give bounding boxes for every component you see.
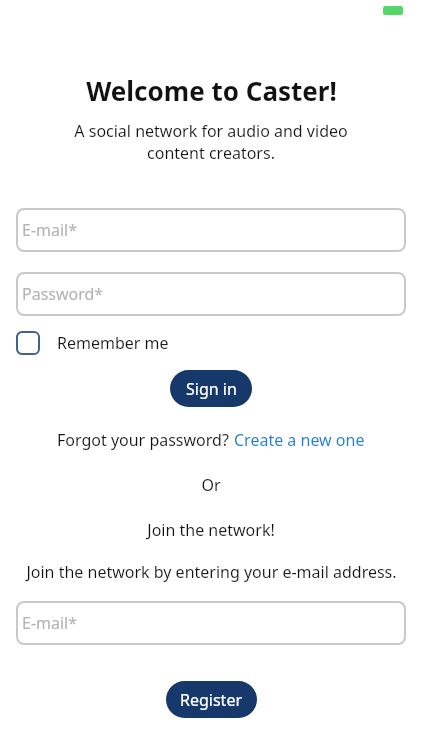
- staticText: A social network for audio and video con…: [74, 120, 348, 164]
- staticText: Join the network!: [147, 519, 275, 541]
- staticText: Or: [201, 474, 221, 496]
- button[interactable]: E-mail*: [16, 208, 406, 252]
- button[interactable]: Create a new one: [234, 429, 365, 451]
- staticText: E-mail*: [22, 219, 78, 241]
- staticText: Remember me: [57, 332, 169, 354]
- staticText: E-mail*: [22, 612, 78, 634]
- staticText: Welcome to Caster!: [86, 73, 337, 108]
- button[interactable]: Sign in: [170, 370, 252, 407]
- button[interactable]: E-mail*: [16, 601, 406, 645]
- staticText: Sign in: [186, 378, 237, 400]
- staticText: Register: [180, 689, 243, 711]
- staticText: Password*: [22, 283, 104, 305]
- button[interactable]: Password*: [16, 272, 406, 316]
- staticText: Join the network by entering your e-mail…: [26, 561, 397, 583]
- button[interactable]: Register: [166, 681, 257, 718]
- staticText: Forgot your password?: [57, 429, 234, 451]
- button[interactable]: Remember me: [16, 331, 169, 355]
